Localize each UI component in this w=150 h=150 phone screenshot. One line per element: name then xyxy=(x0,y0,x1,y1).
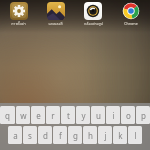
button[interactable]: t xyxy=(61,106,75,124)
button[interactable]: s xyxy=(23,126,37,144)
staticText: t xyxy=(67,110,70,121)
staticText: i xyxy=(112,110,115,121)
staticText: j xyxy=(104,130,107,141)
staticText: u xyxy=(96,110,101,121)
button[interactable]: g xyxy=(68,126,82,144)
button[interactable]: h xyxy=(83,126,97,144)
staticText: กล้องถ่ายรูป xyxy=(84,21,103,26)
button[interactable]: Settings xyxy=(0,0,37,26)
staticText: o xyxy=(126,110,131,121)
button[interactable]: u xyxy=(91,106,105,124)
staticText: p xyxy=(141,110,146,121)
staticText: g xyxy=(73,130,78,141)
button[interactable]: o xyxy=(121,106,135,124)
button[interactable]: Gallery xyxy=(37,0,74,26)
button[interactable]: p xyxy=(136,106,150,124)
button[interactable]: f xyxy=(53,126,67,144)
staticText: f xyxy=(59,130,62,141)
button[interactable]: j xyxy=(98,126,112,144)
staticText: Chrome xyxy=(124,21,138,26)
button[interactable]: Camera xyxy=(74,0,112,26)
button[interactable]: w xyxy=(16,106,30,124)
button[interactable]: r xyxy=(46,106,60,124)
button[interactable]: d xyxy=(38,126,52,144)
button[interactable]: i xyxy=(106,106,120,124)
staticText: แกลเลอรี xyxy=(48,21,63,26)
staticText: r xyxy=(51,110,55,121)
staticText: h xyxy=(88,130,93,141)
staticText: q xyxy=(5,110,10,121)
staticText: s xyxy=(28,130,32,141)
staticText: w xyxy=(20,110,27,121)
staticText: d xyxy=(43,130,48,141)
button[interactable]: k xyxy=(113,126,127,144)
staticText: e xyxy=(36,110,41,121)
button[interactable]: Chrome xyxy=(112,0,150,26)
staticText: a xyxy=(13,130,18,141)
button[interactable]: e xyxy=(31,106,45,124)
staticText: l xyxy=(134,130,137,141)
staticText: k xyxy=(118,130,123,141)
button[interactable]: q xyxy=(0,106,15,124)
button[interactable]: a xyxy=(8,126,22,144)
button[interactable]: l xyxy=(128,126,142,144)
staticText: การตั้งค่า xyxy=(11,21,26,26)
button[interactable]: y xyxy=(76,106,90,124)
staticText: y xyxy=(81,110,86,121)
